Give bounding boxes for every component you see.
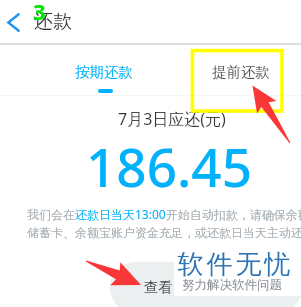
staticText: 努力解决软件问题	[182, 277, 282, 293]
staticText: 查看	[144, 278, 173, 296]
staticText: 提前还款	[212, 63, 270, 81]
staticText: 按期还款	[75, 63, 133, 81]
button[interactable]: 提前还款	[200, 49, 282, 94]
staticText: 储蓄卡、余额宝账户资金充足，或还款日当天主动还款	[27, 225, 301, 240]
button[interactable]	[110, 262, 301, 307]
staticText: 我们会在还款日当天13:00开始自动扣款，请确保余额宝	[27, 206, 301, 222]
button[interactable]: Back	[0, 1, 29, 43]
staticText: 软件无忧	[176, 248, 292, 281]
button[interactable]: 按期还款	[63, 49, 145, 94]
staticText: 还款	[34, 10, 72, 34]
staticText: 3	[33, 0, 46, 26]
staticText: 186.45	[86, 130, 252, 202]
staticText: 7月3日应还(元)	[118, 108, 226, 130]
